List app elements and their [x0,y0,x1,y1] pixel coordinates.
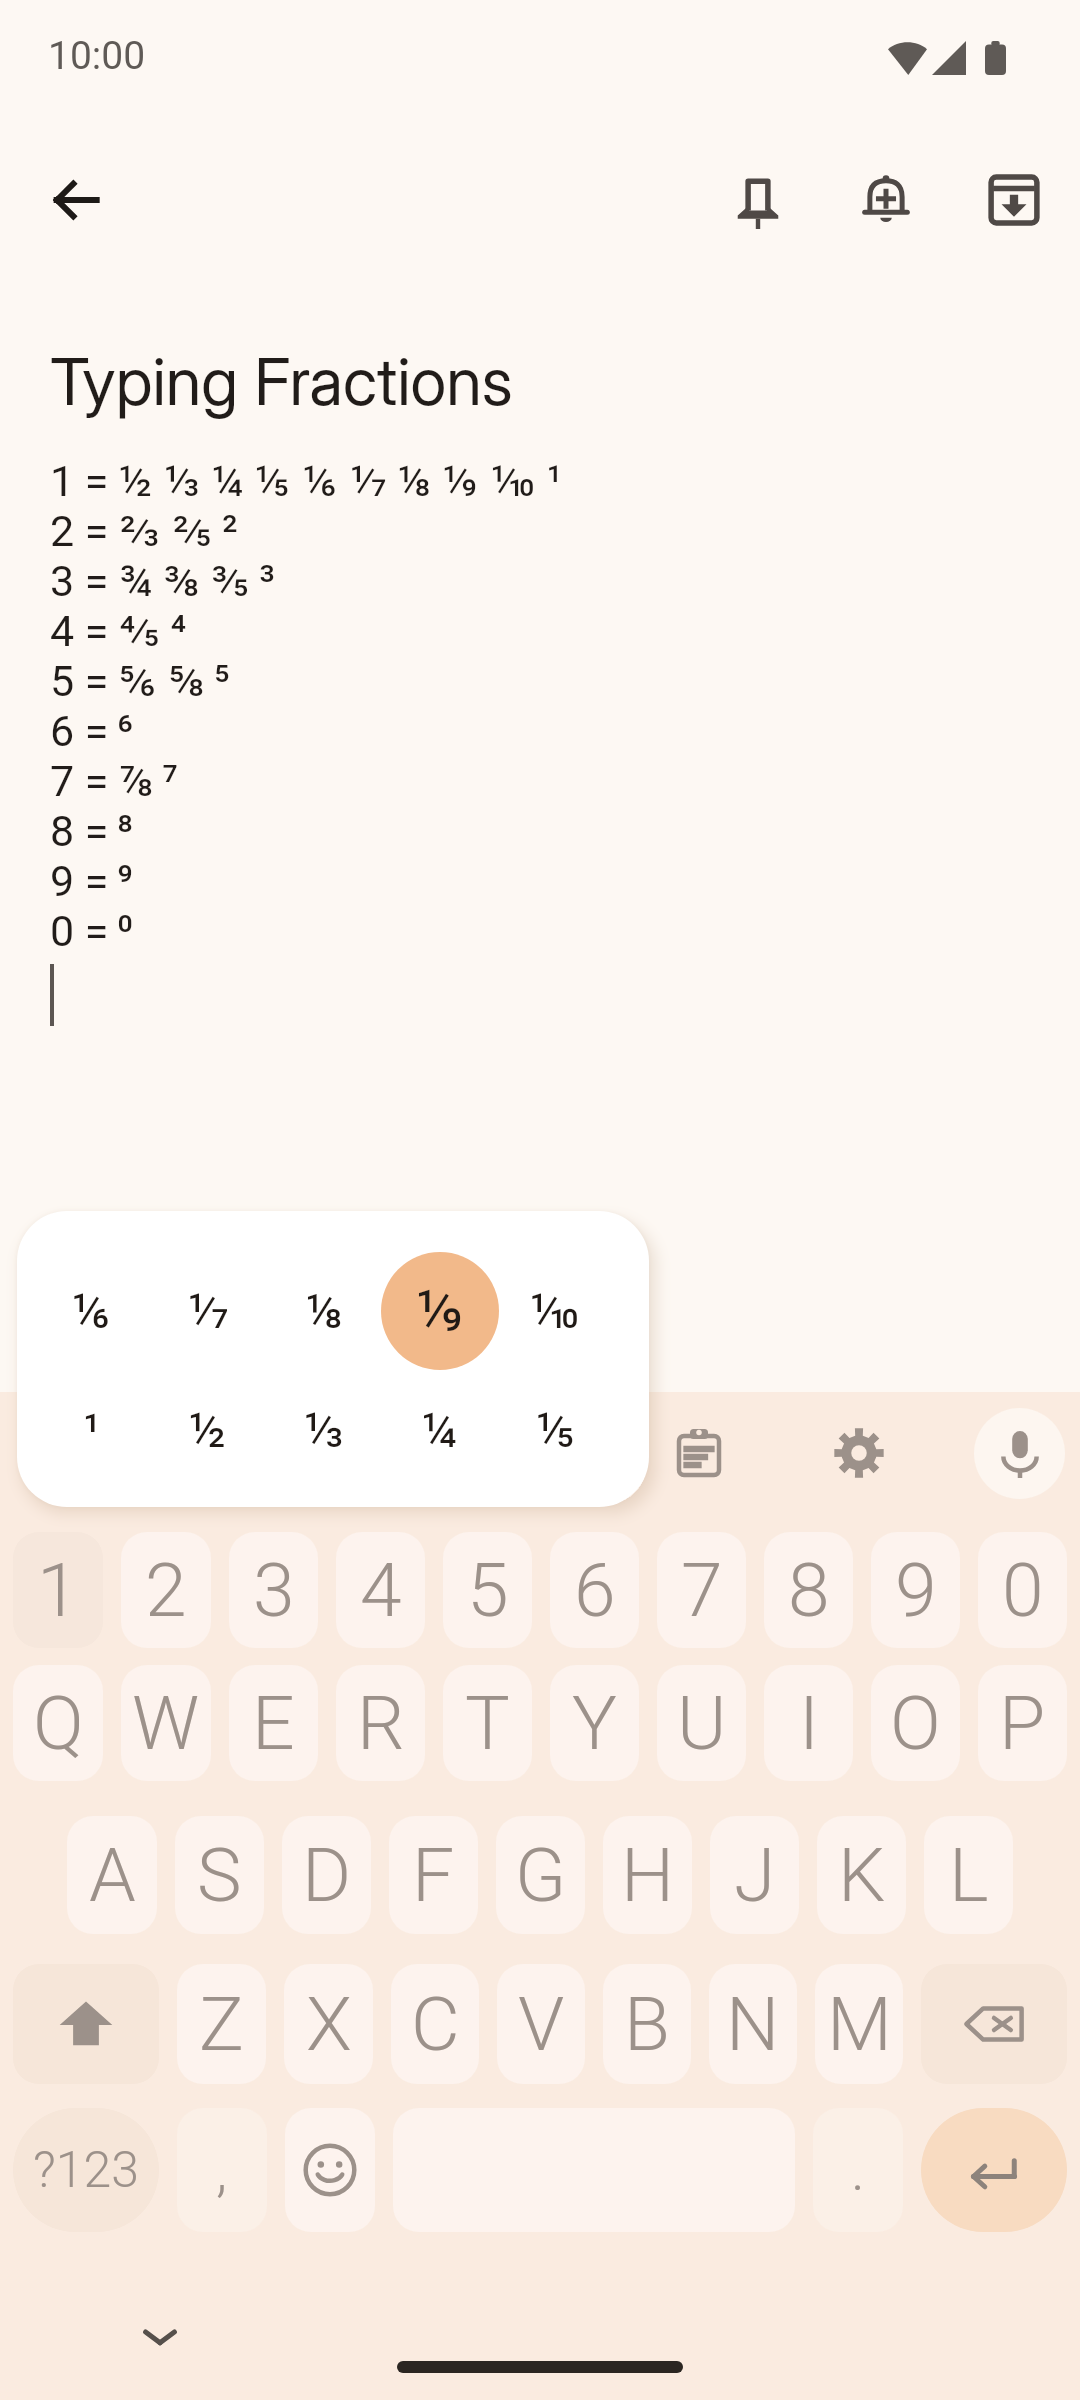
staticText: R [357,1679,405,1767]
button[interactable]: U [657,1665,746,1781]
button[interactable]: Q [13,1665,103,1781]
button[interactable]: 6 [550,1532,639,1648]
staticText: . [851,2136,865,2204]
button[interactable]: Settings [805,1399,913,1507]
staticText: 2 = ⅔ ⅖ ² [50,506,238,556]
button[interactable]: , [177,2108,267,2232]
staticText: ¹ [83,1402,101,1458]
staticText: S [197,1831,242,1919]
staticText: ⅒ [529,1283,583,1339]
button[interactable]: ⅕ [497,1371,615,1489]
button[interactable]: ½ [149,1371,267,1489]
button[interactable]: 0 [978,1532,1067,1648]
button[interactable]: W [121,1665,211,1781]
button[interactable]: D [282,1816,371,1934]
button[interactable]: Voice input [974,1408,1065,1499]
staticText: U [677,1679,727,1767]
button[interactable]: . [813,2108,903,2232]
staticText: ⅙ [71,1283,113,1339]
button[interactable]: Z [177,1964,266,2084]
button[interactable]: F [389,1816,478,1934]
button[interactable]: ⅙ [33,1252,151,1370]
button[interactable]: 9 [871,1532,960,1648]
staticText: J [734,1831,776,1919]
button[interactable]: ⅒ [497,1252,615,1370]
staticText: ¼ [422,1402,458,1458]
button[interactable]: Clipboard [645,1399,753,1507]
button[interactable]: Pin [708,150,808,250]
button[interactable]: Backspace [921,1964,1067,2084]
button[interactable]: G [496,1816,585,1934]
button[interactable]: L [924,1816,1013,1934]
button[interactable]: ¼ [381,1371,499,1489]
staticText: 5 [467,1546,509,1634]
button[interactable]: M [815,1964,903,2084]
staticText: 1 = ½ ⅓ ¼ ⅕ ⅙ ⅐ ⅛ ⅑ ⅒ ¹ [50,456,563,506]
button[interactable]: O [871,1665,960,1781]
button[interactable]: A [67,1816,157,1934]
staticText: K [838,1831,886,1919]
button[interactable]: 5 [443,1532,532,1648]
button[interactable]: ⅑ [381,1252,499,1370]
staticText: 3 = ¾ ⅜ ⅗ ³ [50,556,276,606]
staticText: 9 = ⁹ [50,856,133,906]
button[interactable]: P [978,1665,1067,1781]
staticText: ⅐ [187,1283,230,1339]
button[interactable]: Archive [964,150,1064,250]
staticText: D [302,1831,352,1919]
staticText: A [89,1831,136,1919]
staticText: ⅑ [415,1277,466,1345]
staticText: ?123 [33,2141,139,2200]
button[interactable]: J [710,1816,799,1934]
staticText: V [518,1980,565,2068]
button[interactable]: Hide keyboard [128,2305,192,2369]
button[interactable]: 7 [657,1532,746,1648]
button[interactable]: 4 [336,1532,425,1648]
staticText: 6 [574,1546,616,1634]
staticText: 8 = ⁸ [50,806,133,856]
staticText: F [412,1831,455,1919]
button[interactable]: V [497,1964,585,2084]
staticText: P [999,1679,1046,1767]
staticText: M [827,1980,892,2068]
button[interactable]: ?123 [13,2108,159,2232]
button[interactable]: 8 [764,1532,853,1648]
staticText: X [306,1980,352,2068]
staticText: ⅓ [303,1402,346,1458]
staticText: G [515,1831,567,1919]
staticText: , [216,2136,228,2204]
staticText: T [465,1679,510,1767]
button[interactable]: I [764,1665,853,1781]
button[interactable]: K [817,1816,906,1934]
staticText: O [890,1679,941,1767]
button[interactable]: Enter [921,2108,1067,2232]
button[interactable]: Emoji [285,2108,375,2232]
staticText: ⅛ [306,1283,343,1339]
button[interactable]: X [284,1964,373,2084]
button[interactable]: N [709,1964,797,2084]
button[interactable]: Shift [13,1964,159,2084]
button[interactable]: E [229,1665,318,1781]
button[interactable]: 1 [13,1532,103,1648]
button[interactable]: Y [550,1665,639,1781]
button[interactable]: C [391,1964,479,2084]
button[interactable]: 2 [121,1532,211,1648]
button[interactable]: S [175,1816,264,1934]
button[interactable]: ⅓ [265,1371,383,1489]
button[interactable]: Back [26,150,126,250]
button[interactable]: T [443,1665,532,1781]
button[interactable]: R [336,1665,425,1781]
button[interactable]: Add reminder [836,150,936,250]
button[interactable]: H [603,1816,692,1934]
staticText: 1 [37,1546,79,1634]
staticText: 0 = ⁰ [50,906,133,956]
button[interactable]: ¹ [33,1371,151,1489]
button[interactable]: B [603,1964,691,2084]
staticText: ½ [189,1402,227,1458]
staticText: N [726,1980,780,2068]
button[interactable]: ⅐ [149,1252,267,1370]
staticText: W [132,1679,200,1767]
button[interactable]: 3 [229,1532,318,1648]
button[interactable]: ⅛ [265,1252,383,1370]
